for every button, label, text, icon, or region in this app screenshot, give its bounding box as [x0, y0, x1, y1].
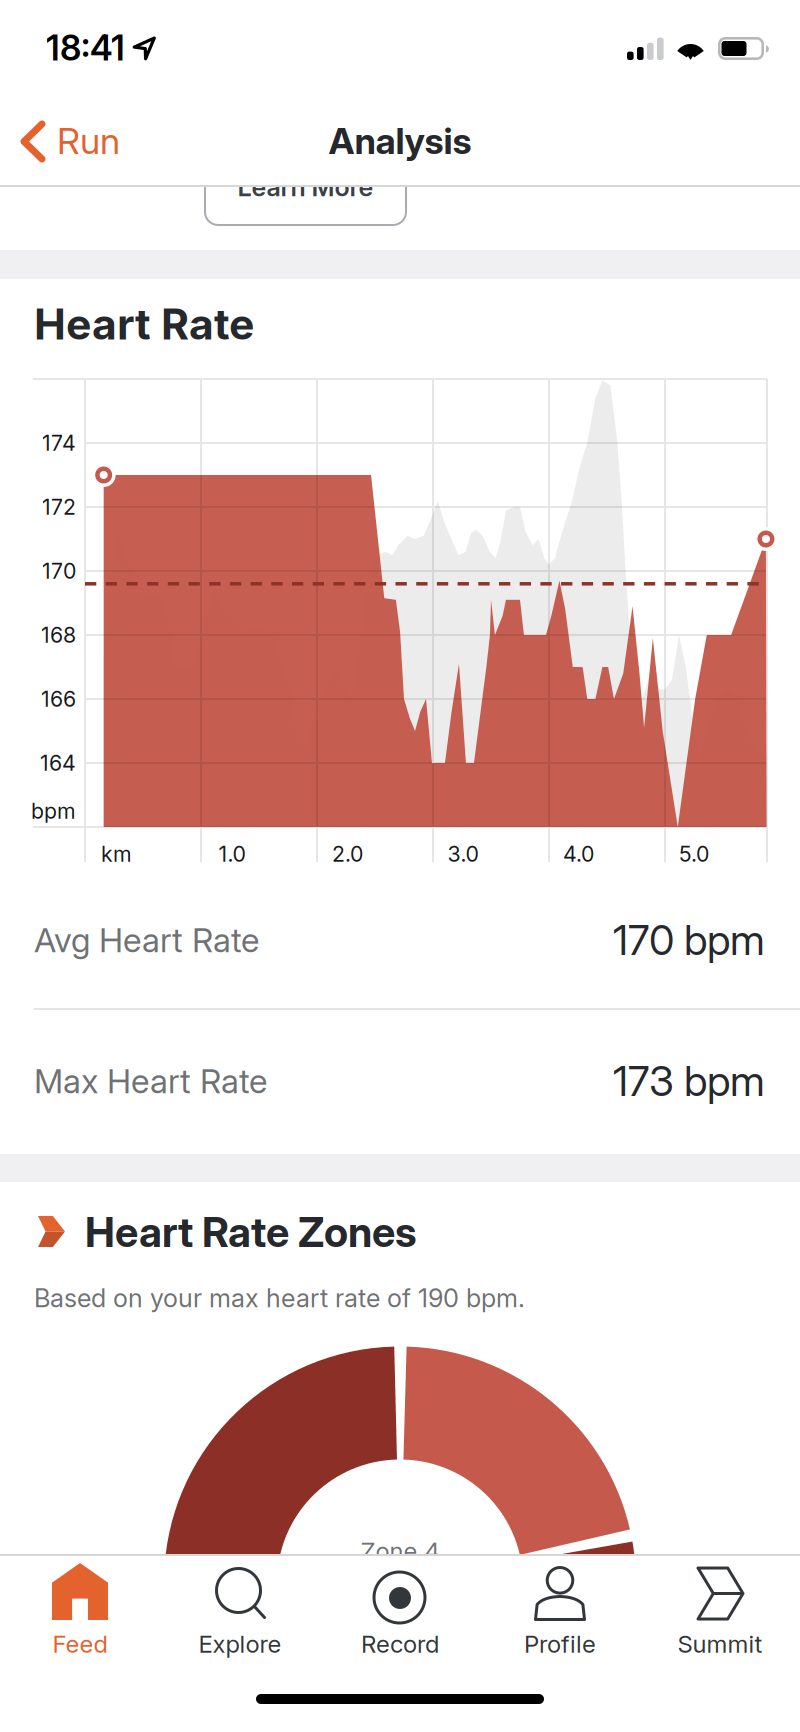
staticText: Learn More	[237, 172, 373, 202]
button[interactable]: Record	[0, 0, 800, 1732]
staticText: 170 bpm	[613, 915, 765, 965]
button[interactable]: Summit	[0, 0, 800, 1732]
staticText: 168	[41, 622, 76, 648]
staticText: 172	[42, 494, 76, 520]
button[interactable]: Explore	[0, 0, 800, 1732]
staticText: Run	[57, 119, 120, 163]
staticText: 164	[40, 750, 76, 776]
staticText: 18:41	[46, 27, 125, 69]
staticText: km	[101, 841, 132, 867]
button[interactable]: Feed	[0, 0, 800, 1732]
staticText: Heart Rate	[34, 298, 254, 350]
staticText: 5.0	[679, 841, 709, 867]
staticText: 174	[42, 430, 76, 456]
staticText: Summit	[677, 1629, 762, 1658]
staticText: Zone 4	[360, 1536, 439, 1565]
staticText: 3.0	[447, 841, 478, 867]
staticText: Analysis	[328, 119, 471, 163]
button[interactable]: Run	[0, 0, 140, 80]
staticText: Record	[361, 1629, 439, 1658]
staticText: 1.0	[218, 841, 245, 867]
staticText: bpm	[31, 798, 76, 824]
staticText: Max Heart Rate	[34, 1061, 267, 1101]
staticText: 170	[42, 558, 76, 584]
staticText: Feed	[52, 1629, 107, 1658]
staticText: Avg Heart Rate	[34, 920, 259, 960]
staticText: Heart Rate Zones	[85, 1207, 417, 1257]
staticText: 4.0	[563, 841, 594, 867]
staticText: Profile	[524, 1629, 596, 1658]
button[interactable]: Learn More	[204, 148, 407, 226]
staticText: Explore	[198, 1629, 281, 1658]
staticText: 173 bpm	[613, 1056, 765, 1106]
staticText: Based on your max heart rate of 190 bpm.	[34, 1283, 525, 1313]
staticText: 2.0	[332, 841, 363, 867]
staticText: 166	[41, 686, 76, 712]
button[interactable]: Profile	[0, 0, 800, 1732]
